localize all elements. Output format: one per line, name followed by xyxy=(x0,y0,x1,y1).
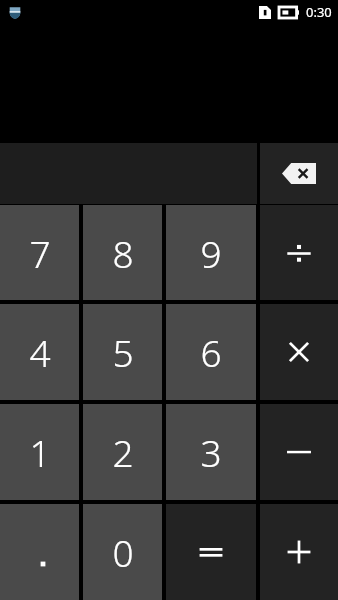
button[interactable]: Backspace xyxy=(260,143,338,204)
staticText: 2 xyxy=(112,427,134,477)
staticText: 3 xyxy=(200,427,222,477)
button[interactable] xyxy=(260,504,338,600)
staticText: 5 xyxy=(112,327,134,377)
staticText: 0 xyxy=(112,527,134,577)
button[interactable]: 7 xyxy=(0,205,79,300)
staticText: 6 xyxy=(200,327,222,377)
button[interactable]: 1 xyxy=(0,404,79,500)
button[interactable] xyxy=(0,504,79,600)
button[interactable] xyxy=(260,404,338,500)
button[interactable]: 3 xyxy=(166,404,256,500)
staticText: 7 xyxy=(29,228,51,278)
button[interactable]: 0 xyxy=(83,504,162,600)
staticText: 9 xyxy=(200,228,222,278)
staticText: 4 xyxy=(29,327,51,377)
button[interactable] xyxy=(260,205,338,300)
staticText: 0:30 xyxy=(306,3,332,21)
button[interactable] xyxy=(260,304,338,400)
button[interactable]: 5 xyxy=(83,304,162,400)
button[interactable]: 8 xyxy=(83,205,162,300)
button[interactable]: 6 xyxy=(166,304,256,400)
staticText: 1 xyxy=(29,427,51,477)
button[interactable]: 9 xyxy=(166,205,256,300)
button[interactable]: 2 xyxy=(83,404,162,500)
button[interactable]: 4 xyxy=(0,304,79,400)
staticText: 8 xyxy=(112,228,134,278)
button[interactable] xyxy=(166,504,256,600)
